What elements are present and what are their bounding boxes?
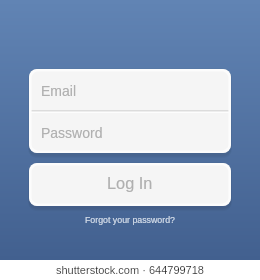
staticText: shutterstock.com · 644799718 [56,264,204,276]
button[interactable]: Password [29,113,231,153]
button[interactable]: Forgot your password? [81,214,179,226]
staticText: Forgot your password? [85,215,175,225]
button[interactable]: Log In [29,163,231,206]
button[interactable]: Email [29,69,231,110]
staticText: Password [41,125,103,141]
staticText: Log In [107,174,153,192]
staticText: Email [41,83,77,99]
